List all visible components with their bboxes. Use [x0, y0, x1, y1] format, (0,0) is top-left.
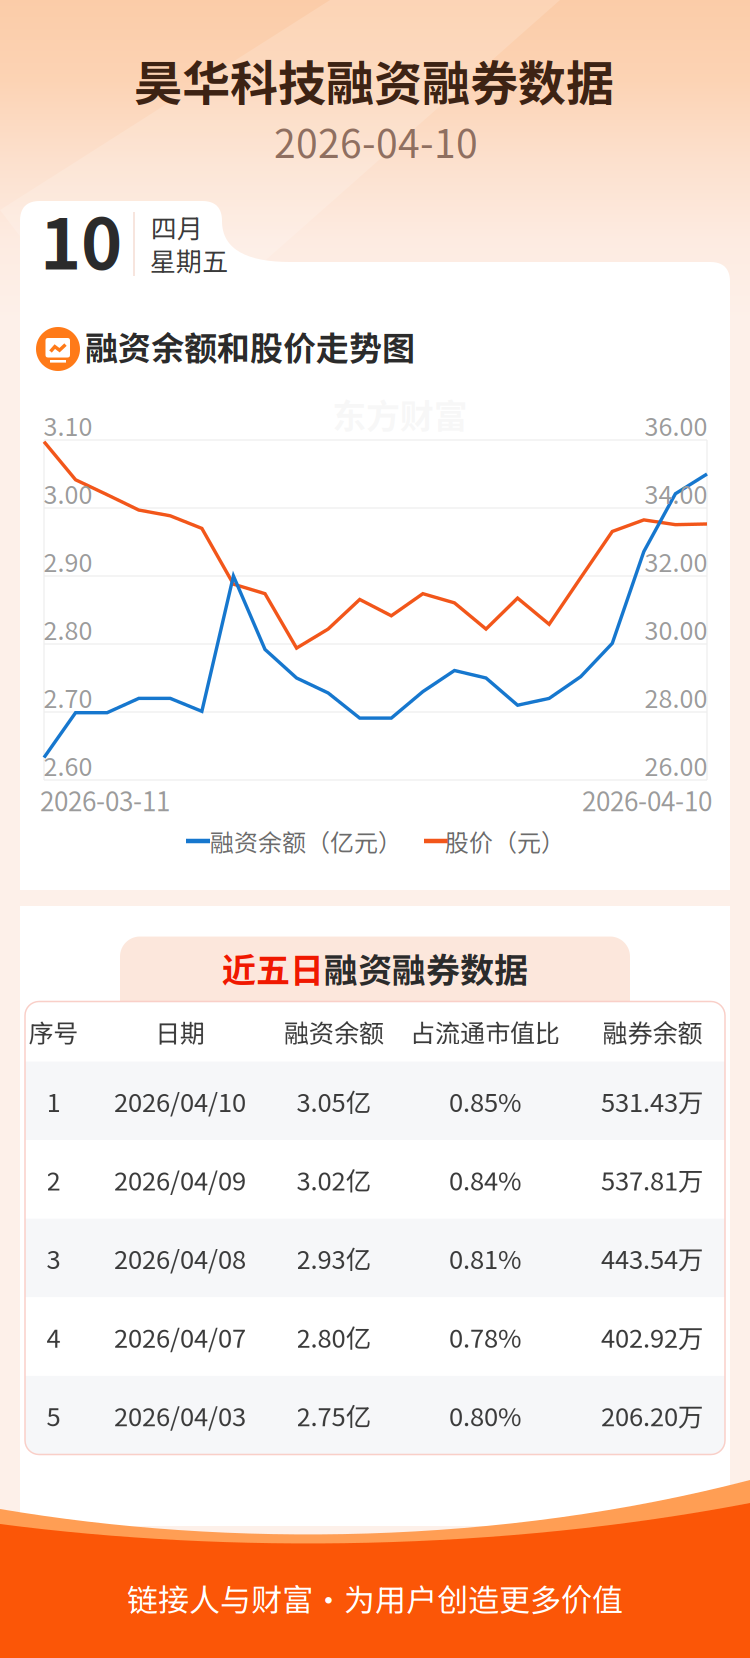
- staticText: 3.05亿: [296, 1082, 371, 1119]
- staticText: 443.54万: [601, 1239, 704, 1276]
- staticText: 2.90: [43, 543, 92, 579]
- staticText: 402.92万: [601, 1318, 704, 1355]
- staticText: 26.00: [644, 747, 707, 783]
- staticText: 2.60: [43, 747, 92, 783]
- staticText: 5: [46, 1397, 60, 1434]
- staticText: 3.10: [43, 407, 92, 443]
- staticText: 0.84%: [449, 1161, 521, 1198]
- staticText: 2026/04/03: [114, 1397, 246, 1434]
- staticText: 3.02亿: [296, 1161, 371, 1198]
- staticText: 融资余额: [284, 1013, 384, 1050]
- staticText: 32.00: [644, 543, 707, 579]
- staticText: 股价（元）: [445, 824, 565, 858]
- staticText: 34.00: [644, 475, 707, 511]
- staticText: 531.43万: [601, 1082, 704, 1119]
- staticText: 四月: [151, 208, 203, 246]
- staticText: 0.80%: [449, 1397, 521, 1434]
- staticText: 昊华科技融资融券数据: [134, 45, 614, 115]
- staticText: 2026/04/08: [114, 1239, 246, 1276]
- staticText: 融资余额和股价走势图: [85, 322, 415, 370]
- staticText: 206.20万: [601, 1397, 704, 1434]
- staticText: 0.78%: [449, 1318, 521, 1355]
- staticText: 序号: [28, 1013, 78, 1050]
- staticText: 0.85%: [449, 1082, 521, 1119]
- staticText: 星期五: [150, 241, 228, 279]
- staticText: 融资融券数据: [324, 943, 528, 993]
- staticText: 2.75亿: [296, 1397, 371, 1434]
- staticText: 2026/04/09: [114, 1161, 246, 1198]
- staticText: 30.00: [644, 611, 707, 647]
- staticText: 占流通市值比: [410, 1013, 560, 1050]
- staticText: 日期: [155, 1013, 205, 1050]
- staticText: 4: [46, 1318, 60, 1355]
- staticText: 10: [40, 188, 122, 290]
- staticText: 28.00: [644, 679, 707, 715]
- staticText: 2026/04/07: [114, 1318, 246, 1355]
- staticText: 2.80亿: [296, 1318, 371, 1355]
- staticText: 2.70: [43, 679, 92, 715]
- staticText: 0.81%: [449, 1239, 521, 1276]
- staticText: 36.00: [644, 407, 707, 443]
- staticText: 融资余额（亿元）: [210, 824, 402, 858]
- staticText: 融券余额: [602, 1013, 702, 1050]
- staticText: 1: [46, 1082, 60, 1119]
- staticText: 近五日: [222, 943, 324, 993]
- staticText: 3: [46, 1239, 60, 1276]
- staticText: 2.80: [43, 611, 92, 647]
- staticText: 2.93亿: [296, 1239, 371, 1276]
- staticText: 2: [46, 1161, 60, 1198]
- staticText: 537.81万: [601, 1161, 704, 1198]
- staticText: 3.00: [43, 475, 92, 511]
- staticText: 2026-04-10: [582, 781, 712, 819]
- staticText: 2026-04-10: [274, 113, 478, 169]
- staticText: 2026-03-11: [40, 781, 170, 819]
- staticText: 2026/04/10: [114, 1082, 246, 1119]
- staticText: 东方财富: [332, 389, 468, 439]
- staticText: 链接人与财富·为用户创造更多价值: [127, 1576, 623, 1620]
